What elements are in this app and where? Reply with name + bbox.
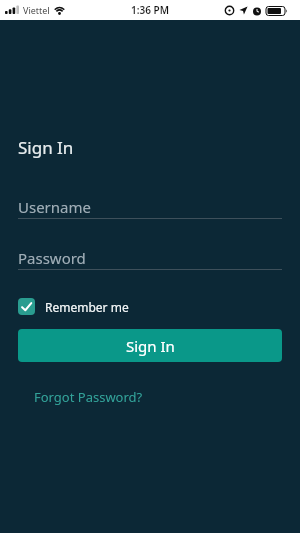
staticText: Username: [18, 197, 91, 217]
staticText: Viettel: [23, 4, 50, 16]
button[interactable]: Forgot Password?: [34, 388, 143, 406]
staticText: Sign In: [126, 336, 175, 356]
staticText: Remember me: [45, 299, 129, 315]
button[interactable]: Sign In: [18, 329, 282, 362]
staticText: 1:36 PM: [131, 3, 169, 17]
staticText: Sign In: [18, 136, 74, 159]
button[interactable]: Remember me: [18, 298, 129, 315]
staticText: Password: [18, 248, 86, 268]
